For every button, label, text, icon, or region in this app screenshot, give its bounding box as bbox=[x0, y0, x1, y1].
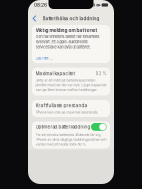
staticText: Detta är ett mått på batterikapaciteten … bbox=[35, 78, 106, 92]
button[interactable]: Läs mer … bbox=[35, 56, 106, 60]
staticText: Den här enhetens batteri har försämrats … bbox=[35, 34, 99, 49]
staticText: Batterihälsa och laddning bbox=[42, 16, 99, 21]
staticText: 83 % bbox=[95, 71, 106, 76]
staticText: Kraftfullaste prestanda bbox=[35, 103, 87, 108]
staticText: Optimerad batteriladdning bbox=[35, 124, 90, 130]
staticText: För att minska batteriets åldrande lär s… bbox=[35, 133, 106, 146]
staticText: Maximal kapacitet bbox=[35, 71, 74, 76]
staticText: iPhone kan inte ge maximal prestanda. bbox=[35, 110, 98, 114]
staticText: 08:26 bbox=[34, 2, 47, 8]
staticText: Läs mer … bbox=[35, 56, 52, 60]
button[interactable]: Optimerad batteriladdning bbox=[35, 122, 106, 131]
button[interactable]: Back bbox=[32, 15, 37, 22]
staticText: Viktig melding om batteriet bbox=[35, 27, 97, 33]
